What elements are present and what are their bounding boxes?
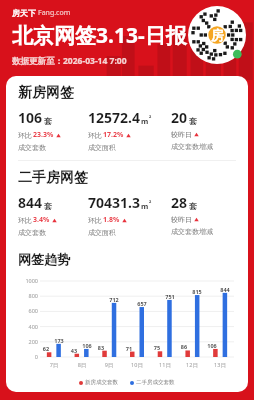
- staticText: 1.8%: [103, 215, 120, 225]
- staticText: 新房网签: [18, 84, 74, 102]
- staticText: 成交套数: [18, 228, 46, 237]
- staticText: 环比: [18, 216, 32, 225]
- button[interactable]: 844: [18, 193, 88, 237]
- staticText: 13日: [211, 361, 229, 369]
- staticText: 62: [40, 345, 52, 352]
- staticText: 657: [135, 300, 149, 307]
- button[interactable]: 70431.3: [88, 193, 171, 237]
- staticText: 套: [189, 116, 197, 126]
- staticText: 12572.4: [88, 108, 140, 127]
- button[interactable]: 新房成交套数: [79, 379, 118, 386]
- staticText: 8日: [73, 361, 91, 369]
- staticText: 106: [80, 342, 94, 349]
- staticText: 成交套数: [18, 143, 46, 152]
- staticText: 成交套数增减: [171, 227, 213, 236]
- staticText: 数据更新至：2026-03-14 7:00: [12, 55, 127, 67]
- staticText: 较昨日: [171, 215, 192, 224]
- button[interactable]: 28: [171, 193, 238, 236]
- staticText: 二手房成交套数: [136, 379, 175, 386]
- staticText: 环比: [88, 216, 102, 225]
- staticText: 3.4%: [33, 215, 50, 225]
- staticText: 二手房网签: [18, 169, 88, 187]
- staticText: 房: [211, 27, 224, 43]
- staticText: 712: [107, 296, 121, 303]
- staticText: 23.3%: [33, 130, 54, 140]
- staticText: 751: [163, 293, 177, 300]
- staticText: 套: [44, 116, 52, 126]
- staticText: 11日: [156, 361, 174, 369]
- staticText: 86: [178, 343, 190, 350]
- staticText: 71: [123, 345, 135, 352]
- staticText: 10日: [128, 361, 146, 369]
- staticText: 成交面积: [88, 228, 116, 237]
- staticText: 106: [206, 342, 218, 349]
- staticText: 7日: [45, 361, 63, 369]
- staticText: 815: [190, 288, 204, 295]
- staticText: 83: [95, 344, 107, 351]
- staticText: 173: [52, 337, 66, 344]
- staticText: 较昨日: [171, 130, 192, 139]
- button[interactable]: 20: [171, 108, 238, 151]
- staticText: 28: [171, 193, 188, 212]
- staticText: 20: [171, 108, 188, 127]
- staticText: m: [141, 116, 149, 126]
- staticText: 106: [18, 108, 43, 127]
- staticText: 房天下: [12, 8, 36, 18]
- button[interactable]: 扫码二维码: [188, 6, 246, 64]
- staticText: 12日: [183, 361, 201, 369]
- staticText: 844: [18, 193, 43, 212]
- staticText: 9日: [100, 361, 118, 369]
- staticText: 200: [14, 338, 38, 345]
- staticText: 新房成交套数: [85, 379, 118, 386]
- staticText: 800: [14, 292, 38, 299]
- staticText: 600: [14, 307, 38, 314]
- staticText: 套: [189, 201, 197, 211]
- staticText: 北京网签3.13-日报: [12, 21, 187, 50]
- staticText: 1000: [14, 277, 38, 284]
- button[interactable]: 106: [18, 108, 88, 152]
- staticText: 75: [151, 344, 163, 351]
- staticText: 网签趋势: [18, 251, 70, 267]
- staticText: 43: [68, 347, 80, 354]
- button[interactable]: 12572.4: [88, 108, 171, 152]
- staticText: 套: [44, 201, 52, 211]
- staticText: 环比: [88, 131, 102, 140]
- staticText: Fang.com: [38, 8, 71, 18]
- staticText: ²: [149, 115, 152, 123]
- staticText: ²: [149, 200, 152, 208]
- staticText: 17.2%: [103, 130, 124, 140]
- staticText: 400: [14, 323, 38, 330]
- staticText: 成交面积: [88, 143, 116, 152]
- button[interactable]: 二手房成交套数: [130, 379, 175, 386]
- staticText: m: [141, 201, 149, 211]
- staticText: 70431.3: [88, 193, 140, 212]
- staticText: 成交套数增减: [171, 142, 213, 151]
- staticText: 0: [14, 353, 38, 360]
- staticText: 环比: [18, 131, 32, 140]
- staticText: 844: [218, 286, 232, 293]
